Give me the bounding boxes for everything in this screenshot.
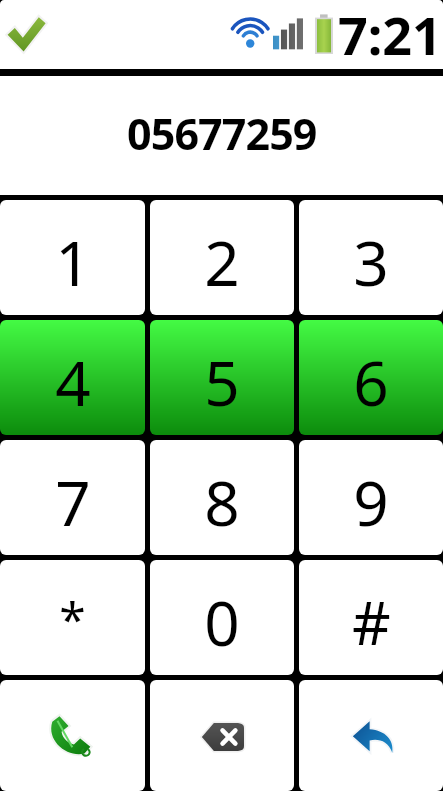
staticText: 2 [204,220,240,304]
button[interactable]: 1 [0,200,145,315]
button[interactable]: Call [0,680,145,791]
staticText: # [352,581,391,663]
button[interactable]: 8 [150,440,294,555]
staticText: 0 [204,580,240,664]
button[interactable]: 4 [0,320,145,435]
staticText: 9 [353,460,389,544]
staticText: 7:21 [338,0,442,68]
button[interactable]: Backspace [150,680,294,791]
staticText: 5 [204,340,240,424]
button[interactable]: # [299,560,443,675]
button[interactable]: 0 [150,560,294,675]
button[interactable]: 5 [150,320,294,435]
button[interactable]: 7 [0,440,145,555]
button[interactable]: Back [299,680,443,791]
button[interactable]: 3 [299,200,443,315]
staticText: 05677259 [127,104,317,163]
button[interactable]: 6 [299,320,443,435]
staticText: 8 [204,460,240,544]
button[interactable]: 2 [150,200,294,315]
button[interactable]: * [0,560,145,675]
staticText: 6 [353,340,389,424]
staticText: * [59,586,86,651]
staticText: 1 [55,220,91,304]
staticText: 3 [353,220,389,304]
button[interactable]: 9 [299,440,443,555]
staticText: 7 [55,460,91,544]
staticText: 4 [55,340,91,424]
